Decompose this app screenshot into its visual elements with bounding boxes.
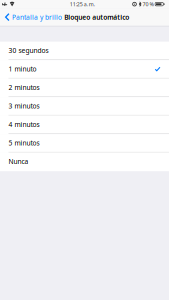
staticText: 4 minutos [8,120,39,129]
staticText: 70 % [142,1,153,8]
staticText: Bloqueo automático [64,13,129,22]
button[interactable]: Pantalla y brillo [0,8,64,26]
staticText: 5 minutos [8,139,39,147]
staticText: 1 minuto [8,65,36,73]
button[interactable]: 5 minutos [0,134,169,153]
button[interactable]: 1 minuto [0,60,169,79]
staticText: 3 minutos [8,102,39,110]
button[interactable]: 3 minutos [0,97,169,116]
staticText: Pantalla y brillo [12,13,62,22]
button[interactable]: 2 minutos [0,79,169,97]
staticText: Nunca [8,157,28,166]
button[interactable]: Nunca [0,153,169,171]
button[interactable]: 30 segundos [0,42,169,60]
staticText: 30 segundos [8,46,48,55]
button[interactable]: 4 minutos [0,116,169,134]
staticText: 2 minutos [8,83,39,92]
staticText: 11:25 a. m. [70,1,95,8]
